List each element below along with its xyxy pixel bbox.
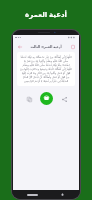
button[interactable]: Play audio	[40, 92, 53, 105]
button[interactable]: اللَّهُمَّ إِنِّي أَسْأَلُكَ مِنْ خَيْرِ…	[17, 52, 75, 86]
staticText: أدعية العمرة: الثالث	[30, 44, 62, 48]
button[interactable]: Apps	[60, 192, 65, 197]
staticText: اللَّهُمَّ إِنِّي أَسْأَلُكَ مِنْ خَيْرِ…	[20, 55, 72, 83]
button[interactable]: Bookmark	[68, 42, 77, 51]
button[interactable]: Copy	[24, 94, 34, 104]
button[interactable]: Share	[59, 94, 69, 104]
staticText: أدعية العمرة	[25, 10, 67, 20]
button[interactable]: Back	[15, 42, 24, 51]
button[interactable]: Home	[27, 194, 38, 196]
